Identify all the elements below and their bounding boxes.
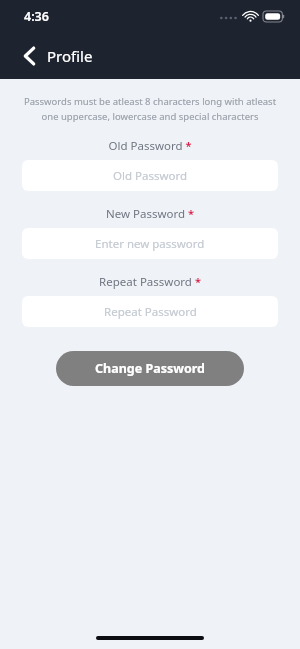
button[interactable]: Repeat Password <box>22 296 278 327</box>
staticText: Repeat Password * <box>0 274 300 290</box>
button[interactable]: Enter new password <box>22 228 278 259</box>
button[interactable]: Change Password <box>56 351 244 386</box>
button[interactable]: Back <box>13 40 45 72</box>
staticText: New Password * <box>0 206 300 222</box>
staticText: 4:36 <box>24 8 49 25</box>
staticText: Profile <box>47 46 93 66</box>
staticText: Change Password <box>95 360 205 377</box>
staticText: Old Password * <box>0 138 300 154</box>
staticText: Passwords must be atleast 8 characters l… <box>16 95 284 123</box>
staticText: Old Password <box>113 168 188 184</box>
staticText: Enter new password <box>95 236 205 252</box>
button[interactable]: Old Password <box>22 160 278 191</box>
staticText: Repeat Password <box>104 304 197 320</box>
